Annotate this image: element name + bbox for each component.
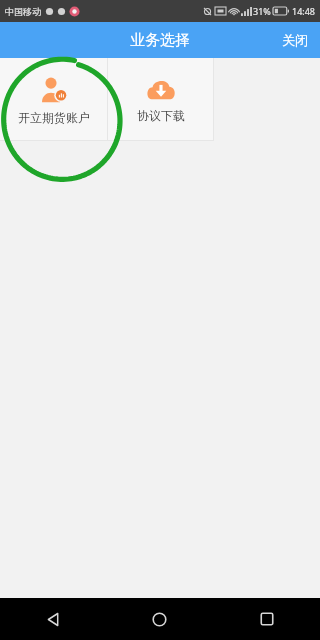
staticText: 31% [253,5,271,17]
staticText: 协议下载 [137,108,185,123]
button[interactable]: Recents [213,598,320,640]
staticText: 业务选择 [130,31,190,50]
staticText: 关闭 [282,32,308,48]
button[interactable]: Open futures account [0,58,107,141]
staticText: 14:48 [292,5,316,17]
staticText: 中国移动 [5,6,41,17]
other: Open futures account [39,77,69,103]
button[interactable]: 关闭 [270,25,320,55]
button[interactable]: Back [0,598,106,640]
button[interactable]: Download agreement [108,58,213,141]
other: Download agreement [146,78,176,101]
button[interactable]: Home [106,598,213,640]
staticText: 开立期货账户 [18,110,90,125]
